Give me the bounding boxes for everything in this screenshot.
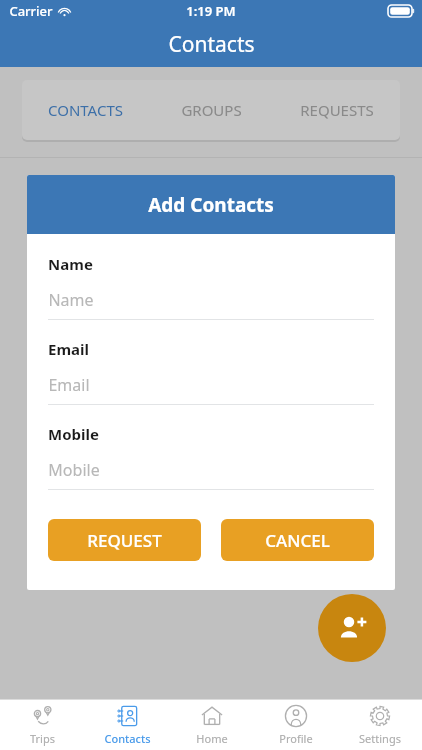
staticText: Name [48, 254, 93, 274]
staticText: REQUEST [87, 529, 162, 552]
button[interactable]: GROUPS [148, 80, 274, 140]
button[interactable]: REQUEST [48, 519, 201, 561]
staticText: Carrier [9, 2, 53, 20]
button[interactable]: Contacts [85, 700, 170, 750]
button[interactable]: Add contact [318, 594, 386, 662]
staticText: REQUESTS [300, 100, 374, 120]
button[interactable]: Profile [254, 700, 338, 750]
staticText: Email [48, 374, 90, 396]
staticText: GROUPS [181, 100, 242, 120]
staticText: Contacts [104, 731, 151, 746]
staticText: Contacts [168, 30, 255, 59]
button[interactable]: Settings [338, 700, 422, 750]
staticText: Mobile [48, 424, 99, 444]
staticText: Name [48, 289, 94, 311]
button[interactable]: Home [170, 700, 254, 750]
staticText: CONTACTS [48, 100, 123, 120]
staticText: Settings [359, 731, 401, 746]
button[interactable]: Trips [0, 700, 85, 750]
staticText: 1:19 PM [186, 2, 236, 20]
staticText: CANCEL [265, 529, 330, 552]
button[interactable]: CONTACTS [22, 80, 148, 140]
staticText: Mobile [48, 459, 100, 481]
staticText: Home [196, 731, 228, 746]
staticText: Profile [279, 731, 313, 746]
staticText: Add Contacts [148, 192, 274, 218]
button[interactable]: CANCEL [221, 519, 374, 561]
button[interactable]: REQUESTS [274, 80, 400, 140]
staticText: Email [48, 339, 89, 359]
staticText: Trips [30, 731, 55, 746]
